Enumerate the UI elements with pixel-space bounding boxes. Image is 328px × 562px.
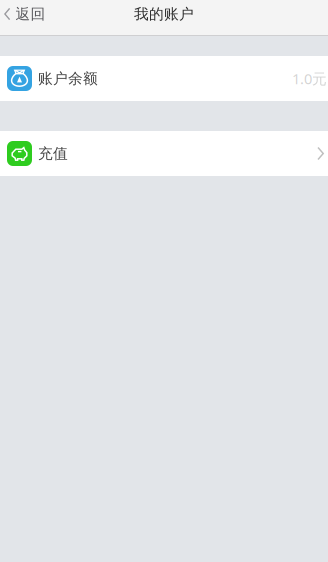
button[interactable]: 返回 — [0, 0, 53, 28]
button[interactable]: 充值 — [0, 131, 328, 176]
staticText: 我的账户 — [134, 5, 194, 23]
staticText: 充值 — [38, 144, 68, 162]
staticText: 1.0元 — [292, 69, 327, 88]
staticText: 返回 — [15, 5, 45, 23]
button[interactable]: 账户余额 — [0, 56, 328, 101]
staticText: 账户余额 — [38, 69, 98, 87]
